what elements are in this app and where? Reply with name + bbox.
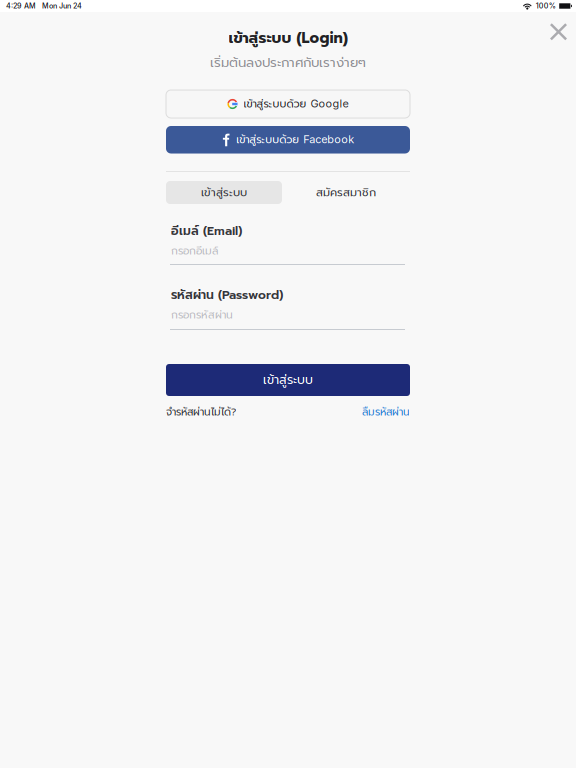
- staticText: เข้าสู่ระบบ: [201, 184, 247, 201]
- button[interactable]: เข้าสู่ระบบ: [166, 181, 282, 204]
- staticText: เข้าสู่ระบบ: [263, 371, 313, 389]
- staticText: อีเมล์ (Email): [171, 222, 242, 240]
- button[interactable]: ลืมรหัสผ่าน: [362, 404, 410, 420]
- staticText: สมัครสมาชิก: [316, 184, 376, 201]
- staticText: กรอกอีเมล์: [171, 243, 218, 259]
- button[interactable]: เข้าสู่ระบบด้วย Google: [166, 90, 410, 118]
- button[interactable]: เข้าสู่ระบบด้วย Facebook: [166, 126, 410, 153]
- staticText: เข้าสู่ระบบด้วย Google: [244, 96, 349, 112]
- button[interactable]: เข้าสู่ระบบ: [166, 364, 410, 396]
- staticText: จำรหัสผ่านไม่ได้?: [166, 404, 236, 420]
- staticText: ลืมรหัสผ่าน: [362, 404, 410, 420]
- staticText: รหัสผ่าน (Password): [171, 286, 283, 304]
- staticText: เข้าสู่ระบบด้วย Facebook: [236, 132, 354, 148]
- button[interactable]: สมัครสมาชิก: [282, 181, 410, 204]
- button[interactable]: จำรหัสผ่านไม่ได้?: [166, 404, 236, 420]
- button[interactable]: Close: [549, 23, 567, 41]
- staticText: Mon Jun 24: [42, 2, 82, 10]
- staticText: เข้าสู่ระบบ (Login): [228, 27, 347, 49]
- staticText: 100%: [536, 2, 556, 10]
- staticText: เริ่มต้นลงประกาศกับเราง่ายๆ: [210, 52, 366, 72]
- staticText: 4:29 AM: [6, 2, 36, 10]
- staticText: กรอกรหัสผ่าน: [171, 307, 233, 323]
